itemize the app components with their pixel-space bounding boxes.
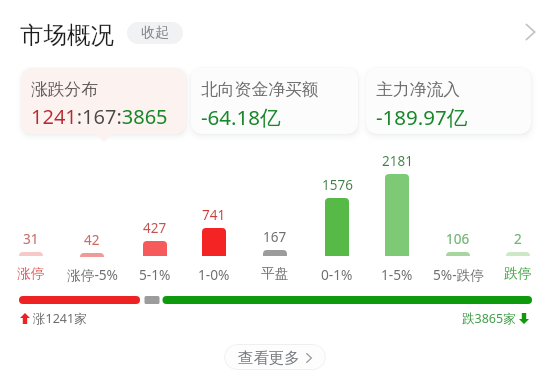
button[interactable]: 展开更多 <box>516 18 544 46</box>
staticText: 2 <box>514 230 522 248</box>
button[interactable]: 收起 <box>127 22 183 44</box>
staticText: 北向资金净买额 <box>201 79 319 100</box>
staticText: 106 <box>446 230 470 248</box>
staticText: 0-1% <box>321 265 353 284</box>
staticText: 2181 <box>382 152 413 170</box>
staticText: 5%-跌停 <box>433 265 484 284</box>
staticText: 1241:167:3865 <box>31 103 168 130</box>
button[interactable]: 查看更多 <box>224 344 326 370</box>
staticText: 主力净流入 <box>376 79 460 100</box>
staticText: -189.97亿 <box>376 103 468 131</box>
staticText: 收起 <box>141 24 169 42</box>
staticText: 涨1241家 <box>33 310 87 327</box>
staticText: 741 <box>202 206 226 224</box>
staticText: 167 <box>263 228 287 246</box>
staticText: 跌3865家 <box>462 310 516 327</box>
staticText: 涨停-5% <box>67 265 118 284</box>
button[interactable]: 涨跌分布 <box>21 68 186 134</box>
staticText: 31 <box>23 230 39 248</box>
staticText: 42 <box>84 231 100 249</box>
staticText: 市场概况 <box>20 20 114 50</box>
staticText: 查看更多 <box>238 348 300 367</box>
button[interactable]: 主力净流入 <box>366 68 531 134</box>
staticText: 1576 <box>322 176 353 194</box>
staticText: 1-5% <box>381 265 413 284</box>
staticText: 跌停 <box>504 265 532 282</box>
staticText: 涨跌分布 <box>31 79 99 100</box>
staticText: 涨停 <box>17 265 45 282</box>
staticText: 平盘 <box>261 265 289 282</box>
staticText: 1-0% <box>198 265 230 284</box>
staticText: -64.18亿 <box>201 103 281 131</box>
staticText: 5-1% <box>139 265 171 284</box>
staticText: 427 <box>143 219 167 237</box>
button[interactable]: 北向资金净买额 <box>191 68 358 134</box>
